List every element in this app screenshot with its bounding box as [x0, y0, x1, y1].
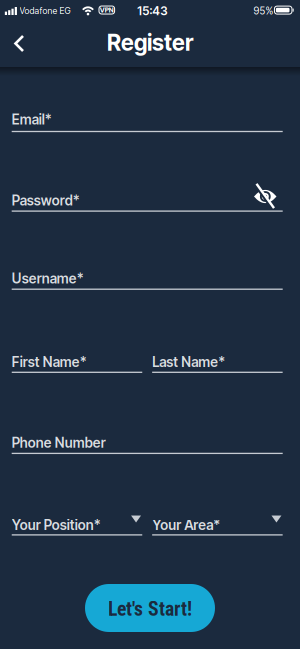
staticText: VPN: [100, 6, 114, 14]
button[interactable]: Back: [0, 21, 41, 65]
staticText: Let's Start!: [108, 597, 192, 620]
button[interactable]: Let's Start!: [85, 584, 215, 632]
button[interactable]: Your Area*: [152, 505, 283, 535]
staticText: Your Position*: [12, 517, 101, 533]
staticText: Email*: [12, 111, 52, 128]
button[interactable]: Your Position*: [12, 505, 142, 535]
staticText: First Name*: [12, 354, 87, 370]
button[interactable]: Show password: [248, 179, 282, 213]
staticText: Last Name*: [152, 354, 225, 370]
staticText: Vodafone EG: [19, 5, 70, 16]
staticText: Your Area*: [152, 517, 220, 533]
staticText: Register: [107, 29, 193, 56]
staticText: Username*: [12, 270, 84, 287]
staticText: Phone Number: [12, 434, 106, 451]
staticText: 95%: [253, 5, 273, 17]
staticText: 15:43: [137, 3, 167, 18]
staticText: Password*: [12, 192, 80, 209]
